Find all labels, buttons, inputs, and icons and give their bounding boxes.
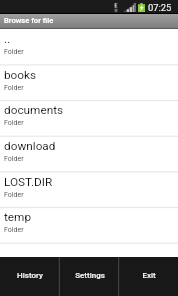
- staticText: books: [4, 68, 37, 82]
- staticText: Folder: [4, 226, 24, 234]
- button[interactable]: Exit: [119, 257, 178, 296]
- staticText: download: [4, 139, 56, 153]
- staticText: LOST.DIR: [4, 175, 53, 189]
- button[interactable]: Settings: [60, 257, 119, 296]
- button[interactable]: documents: [0, 100, 178, 136]
- staticText: Folder: [4, 155, 24, 163]
- staticText: Settings: [75, 271, 105, 280]
- staticText: Folder: [4, 119, 24, 127]
- staticText: documents: [4, 103, 64, 117]
- staticText: Folder: [4, 84, 24, 92]
- button[interactable]: LOST.DIR: [0, 172, 178, 208]
- staticText: Folder: [4, 191, 24, 199]
- button[interactable]: books: [0, 65, 178, 101]
- staticText: Browse for file: [4, 16, 54, 25]
- button[interactable]: History: [0, 257, 60, 296]
- button[interactable]: temp: [0, 207, 178, 243]
- button[interactable]: download: [0, 136, 178, 172]
- staticText: ..: [4, 32, 11, 46]
- staticText: History: [17, 271, 43, 280]
- staticText: 07:25: [148, 2, 172, 13]
- button[interactable]: ..: [0, 29, 178, 65]
- staticText: Folder: [4, 48, 24, 56]
- staticText: Exit: [142, 271, 156, 280]
- staticText: temp: [4, 210, 32, 224]
